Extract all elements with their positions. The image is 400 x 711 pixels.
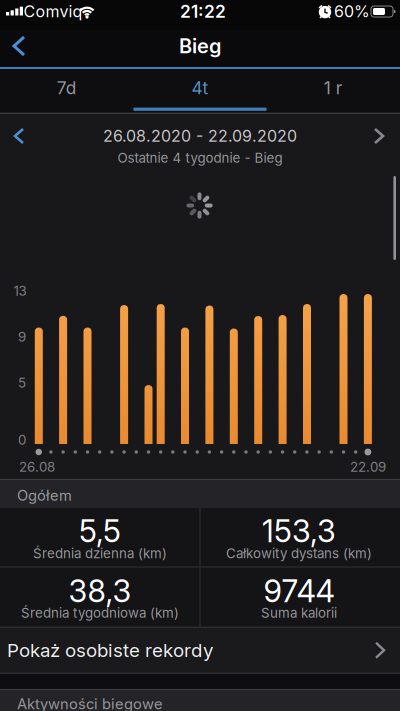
staticText: 26.08 [19, 459, 55, 475]
staticText: 153,3 [262, 513, 336, 549]
staticText: Średnia dzienna (km) [33, 546, 167, 561]
staticText: 9744 [263, 573, 334, 609]
staticText: Ostatnie 4 tygodnie - Bieg [117, 150, 282, 166]
staticText: Suma kalorii [261, 605, 337, 621]
button[interactable]: 1 r [267, 69, 400, 107]
staticText: 0 [18, 432, 26, 448]
staticText: 26.08.2020 - 22.09.2020 [103, 127, 297, 145]
button[interactable]: Back [2, 29, 36, 63]
staticText: Comviq [23, 2, 82, 21]
staticText: 7d [57, 78, 77, 98]
staticText: Ogółem [17, 487, 72, 504]
button[interactable]: Pokaż osobiste rekordy [0, 628, 400, 672]
staticText: 22.09 [350, 459, 386, 475]
button[interactable]: 7d [0, 69, 133, 107]
staticText: 38,3 [68, 573, 131, 609]
staticText: 5 [18, 375, 26, 391]
staticText: Całkowity dystans (km) [226, 546, 372, 561]
button[interactable]: Next period [364, 121, 394, 151]
staticText: 13 [13, 283, 26, 299]
staticText: Pokaż osobiste rekordy [7, 639, 213, 661]
staticText: Średnia tygodniowa (km) [21, 605, 179, 621]
button[interactable]: 4t [133, 69, 267, 107]
staticText: 60% [334, 2, 370, 21]
staticText: 9 [18, 329, 26, 345]
staticText: 5,5 [79, 513, 121, 549]
button[interactable]: Previous period [4, 121, 34, 151]
staticText: Bieg [179, 34, 221, 58]
staticText: Aktywności biegowe [17, 695, 163, 711]
staticText: 4t [191, 78, 208, 98]
staticText: 21:22 [180, 1, 226, 22]
staticText: 1 r [324, 78, 343, 98]
